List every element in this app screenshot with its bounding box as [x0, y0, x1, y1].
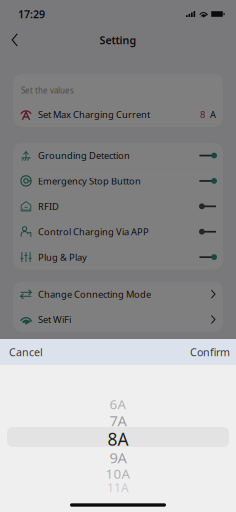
staticText: 7A	[109, 411, 126, 430]
staticText: Cancel	[9, 345, 43, 359]
staticText: 6A	[109, 395, 126, 413]
staticText: Grounding Detection	[38, 149, 130, 162]
staticText: Set Max Charging Current	[38, 108, 150, 121]
staticText: 8A	[107, 427, 128, 450]
staticText: 10A	[105, 465, 130, 482]
staticText: A	[210, 108, 216, 121]
button[interactable]: Emergency Stop Button	[13, 168, 223, 193]
staticText: Change Connecting Mode	[38, 288, 151, 300]
staticText: Emergency Stop Button	[38, 175, 141, 187]
staticText: Set WiFi	[38, 313, 71, 326]
button[interactable]: Plug & Play	[13, 245, 223, 270]
staticText: 11A	[107, 479, 129, 495]
staticText: 17:29	[18, 7, 45, 21]
button[interactable]: Control Charging Via APP	[13, 219, 223, 244]
button[interactable]: Change Connecting Mode	[13, 282, 223, 307]
staticText: RFID	[38, 200, 59, 212]
button[interactable]: Back	[5, 29, 25, 51]
staticText: Setting	[99, 33, 136, 47]
button[interactable]: Set WiFi	[13, 307, 223, 332]
staticText: 9A	[109, 448, 126, 467]
staticText: Plug & Play	[38, 251, 87, 263]
staticText: Control Charging Via APP	[38, 225, 149, 238]
staticText: Set the values	[21, 85, 74, 96]
button[interactable]: Confirm	[180, 339, 236, 365]
button[interactable]: Cancel	[0, 339, 53, 365]
staticText: 8	[200, 108, 205, 121]
button[interactable]: RFID	[13, 194, 223, 219]
staticText: Confirm	[190, 345, 230, 359]
button[interactable]: Grounding Detection	[13, 143, 223, 168]
button[interactable]: Set Max Charging Current	[13, 102, 223, 127]
